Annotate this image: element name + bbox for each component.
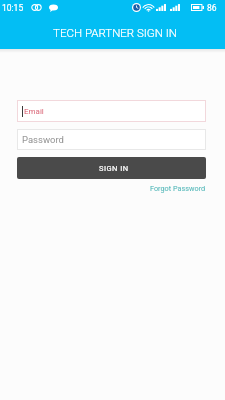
staticText: Email: [24, 107, 44, 116]
button[interactable]: SIGN IN: [17, 157, 206, 179]
button[interactable]: Password: [17, 129, 206, 150]
staticText: 10:15: [2, 3, 24, 13]
staticText: 86: [207, 3, 217, 13]
staticText: Forgot Password: [150, 184, 206, 193]
staticText: TECH PARTNER SIGN IN: [53, 26, 177, 39]
button[interactable]: Email: [17, 100, 206, 122]
staticText: SIGN IN: [99, 164, 129, 173]
button[interactable]: Forgot Password: [150, 184, 206, 193]
staticText: Password: [22, 134, 64, 145]
